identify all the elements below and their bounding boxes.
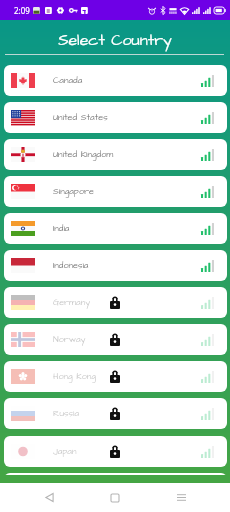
staticText: Select Country <box>0 29 230 51</box>
staticText: Japan <box>53 445 77 458</box>
button[interactable]: Japan <box>4 436 227 467</box>
button[interactable]: Germany <box>4 287 227 318</box>
button[interactable]: Indonesia <box>4 250 227 281</box>
staticText: Norway <box>53 333 86 346</box>
button[interactable]: United Kingdom <box>4 139 227 170</box>
button[interactable]: Hong Kong <box>4 361 227 392</box>
button[interactable]: Back <box>32 483 66 512</box>
staticText: Russia <box>53 407 79 420</box>
button[interactable]: Canada <box>4 65 227 96</box>
button[interactable]: Russia <box>4 398 227 429</box>
button[interactable]: Recent apps <box>164 483 198 512</box>
staticText: Hong Kong <box>53 370 96 383</box>
staticText: Canada <box>53 74 83 87</box>
staticText: United States <box>53 111 108 124</box>
button[interactable]: Home <box>98 483 132 512</box>
staticText: Indonesia <box>53 259 89 272</box>
staticText: India <box>53 222 70 235</box>
staticText: Singapore <box>53 185 94 198</box>
staticText: United Kingdom <box>53 148 114 161</box>
staticText: 2:09 <box>14 5 30 16</box>
button[interactable]: Singapore <box>4 176 227 207</box>
staticText: Germany <box>53 296 91 309</box>
button[interactable]: France <box>4 473 227 475</box>
button[interactable]: United States <box>4 102 227 133</box>
button[interactable]: India <box>4 213 227 244</box>
button[interactable]: Norway <box>4 324 227 355</box>
